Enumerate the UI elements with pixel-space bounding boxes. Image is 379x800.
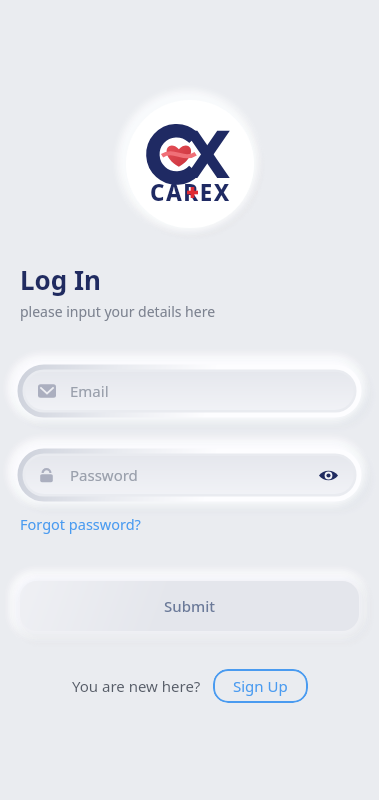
- button[interactable]: Submit: [20, 581, 359, 631]
- staticText: Sign Up: [233, 676, 288, 696]
- staticText: You are new here?: [72, 676, 201, 696]
- button[interactable]: Show password: [315, 462, 341, 488]
- button[interactable]: Sign Up: [213, 669, 308, 703]
- staticText: Submit: [164, 596, 215, 616]
- button[interactable]: Email: [20, 367, 359, 415]
- staticText: CAREX: [150, 177, 231, 208]
- staticText: Forgot password?: [20, 514, 141, 534]
- staticText: Email: [70, 381, 109, 401]
- button[interactable]: Forgot password?: [20, 511, 141, 537]
- button[interactable]: Password: [20, 451, 359, 499]
- staticText: Password: [70, 465, 138, 485]
- staticText: Log In: [20, 262, 101, 297]
- staticText: please input your details here: [20, 302, 216, 321]
